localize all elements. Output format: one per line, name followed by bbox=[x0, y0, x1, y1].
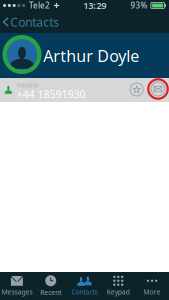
staticText: Keypad bbox=[107, 287, 130, 296]
staticText: 13:29 bbox=[83, 0, 106, 12]
staticText: Recent bbox=[40, 288, 61, 297]
button[interactable]: Keypad bbox=[101, 272, 135, 300]
button[interactable]: Send message bbox=[147, 78, 168, 99]
button[interactable]: Contacts bbox=[68, 272, 101, 300]
staticText: Arthur Doyle bbox=[43, 45, 139, 66]
staticText: Messages bbox=[1, 287, 32, 296]
button[interactable]: Messages bbox=[0, 272, 34, 300]
staticText: Tele2 bbox=[29, 0, 50, 11]
staticText: More bbox=[144, 287, 161, 296]
staticText: +44 18591930 bbox=[16, 87, 85, 101]
staticText: Contacts bbox=[71, 287, 97, 296]
staticText: Contacts bbox=[10, 14, 59, 30]
button[interactable]: Recent bbox=[34, 272, 68, 300]
button[interactable]: More bbox=[135, 272, 169, 300]
button[interactable]: Add to favourites bbox=[129, 81, 145, 97]
staticText: mobile bbox=[17, 80, 39, 89]
button[interactable]: Contacts bbox=[0, 9, 62, 35]
staticText: 93% bbox=[130, 0, 147, 11]
